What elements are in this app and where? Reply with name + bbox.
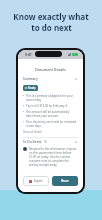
staticText: Summary [23, 77, 38, 81]
button[interactable]: To Do Items [23, 140, 78, 144]
staticText: Your electricity use needs be reviewed i… [26, 120, 78, 128]
staticText: Export [34, 179, 43, 183]
staticText: Know exactly what [13, 11, 89, 22]
staticText: to do next [31, 22, 72, 33]
button[interactable]: Share [52, 176, 78, 186]
staticText: To Do Items [23, 140, 42, 144]
staticText: 9:41 [25, 52, 32, 57]
staticText: The amount will be automatically taken f… [26, 110, 78, 118]
button[interactable]: Export [23, 176, 49, 186]
staticText: Pay in full $14.00 by February 4. [26, 104, 78, 108]
staticText: Respond to the information request on th… [29, 147, 78, 167]
other: Expand [74, 140, 78, 144]
staticText: Share [61, 179, 69, 183]
staticText: This is a primary obligation for your te… [26, 94, 78, 102]
staticText: Ready [28, 86, 36, 90]
button[interactable]: Summary [23, 77, 78, 81]
staticText: (3) [44, 140, 48, 144]
button[interactable]: Show all details [23, 130, 42, 134]
staticText: Document Details [35, 67, 66, 72]
button[interactable]: Ready [23, 85, 38, 91]
other: Expand [74, 77, 78, 81]
